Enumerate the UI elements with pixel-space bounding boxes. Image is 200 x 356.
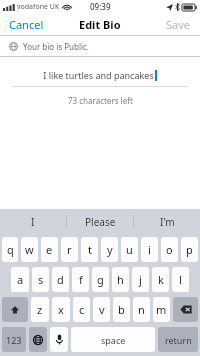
button[interactable]: c [73, 297, 90, 322]
button[interactable]: g [92, 267, 109, 292]
button[interactable]: m [153, 297, 170, 322]
staticText: return [165, 334, 192, 346]
staticText: 09:39 [90, 1, 111, 12]
button[interactable]: d [52, 267, 69, 292]
button[interactable]: w [21, 237, 38, 262]
button[interactable]: v [93, 297, 110, 322]
button[interactable]: y [101, 237, 118, 262]
button[interactable]: o [161, 237, 178, 262]
staticText: g [97, 272, 104, 287]
staticText: v [99, 302, 105, 317]
button[interactable]: Save [157, 13, 200, 35]
staticText: 73 characters left [68, 95, 133, 106]
staticText: o [166, 242, 173, 257]
staticText: r [67, 242, 72, 257]
button[interactable]: Please [67, 209, 133, 234]
staticText: b [118, 302, 125, 317]
staticText: I'm [160, 215, 175, 229]
staticText: m [156, 302, 167, 317]
button[interactable]: Dictation [50, 327, 68, 352]
button[interactable]: l [172, 267, 189, 292]
staticText: h [117, 272, 124, 287]
button[interactable]: Switch keyboard [29, 327, 47, 352]
button[interactable]: Your bio is Public. [0, 36, 200, 56]
staticText: x [58, 302, 64, 317]
staticText: j [139, 272, 142, 287]
button[interactable]: return [158, 327, 198, 352]
staticText: d [57, 272, 64, 287]
button[interactable]: s [32, 267, 49, 292]
staticText: z [37, 302, 43, 317]
staticText: Please [85, 215, 116, 229]
staticText: e [46, 242, 53, 257]
staticText: y [107, 242, 113, 257]
button[interactable]: e [41, 237, 58, 262]
staticText: I like turtles and pancakes [43, 69, 154, 81]
button[interactable]: f [72, 267, 89, 292]
button[interactable]: t [81, 237, 98, 262]
staticText: Edit Bio [79, 17, 121, 32]
staticText: i [148, 242, 151, 257]
button[interactable]: space [71, 327, 155, 352]
staticText: I [31, 215, 35, 229]
button[interactable]: u [121, 237, 138, 262]
button[interactable]: p [181, 237, 198, 262]
staticText: a [17, 272, 24, 287]
button[interactable]: r [61, 237, 78, 262]
staticText: Cancel [9, 17, 44, 31]
button[interactable]: b [113, 297, 130, 322]
button[interactable]: h [112, 267, 129, 292]
staticText: 123 [6, 334, 22, 346]
staticText: Save [166, 17, 191, 31]
button[interactable]: k [152, 267, 169, 292]
button[interactable]: q [2, 237, 18, 262]
button[interactable]: a [11, 267, 29, 292]
staticText: c [79, 302, 85, 317]
button[interactable]: x [52, 297, 70, 322]
button[interactable]: 123 [2, 327, 26, 352]
button[interactable]: I'm [134, 209, 200, 234]
staticText: k [158, 272, 164, 287]
button[interactable]: z [31, 297, 49, 322]
staticText: u [126, 242, 133, 257]
button[interactable]: n [133, 297, 150, 322]
button[interactable]: I [0, 209, 66, 234]
staticText: s [38, 272, 44, 287]
button[interactable]: Shift [2, 297, 28, 322]
staticText: t [88, 242, 92, 257]
staticText: vodafone UK [17, 2, 60, 12]
button[interactable]: I like turtles and pancakes [12, 67, 188, 83]
staticText: l [179, 272, 182, 287]
staticText: f [79, 272, 83, 287]
staticText: w [25, 242, 34, 257]
staticText: Your bio is Public. [23, 41, 89, 52]
staticText: p [186, 242, 193, 257]
staticText: n [138, 302, 145, 317]
staticText: space [101, 334, 126, 346]
button[interactable]: j [132, 267, 149, 292]
button[interactable]: Backspace [173, 297, 198, 322]
button[interactable]: Cancel [0, 13, 53, 35]
button[interactable]: i [141, 237, 158, 262]
staticText: q [7, 242, 14, 257]
